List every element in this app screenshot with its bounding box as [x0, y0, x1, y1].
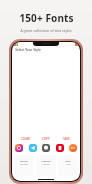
- button[interactable]: CLEAR: [15, 135, 35, 142]
- staticText: Preview: [20, 163, 28, 166]
- staticText: COPY: [42, 137, 50, 141]
- button[interactable]: Share to WhatsApp: [42, 144, 50, 152]
- staticText: Select Your Style: [15, 48, 41, 52]
- button[interactable]: Share to Pinterest: [56, 144, 64, 152]
- staticText: A great collection of text styles: [20, 28, 72, 33]
- button[interactable]: More options: [69, 144, 77, 152]
- button[interactable]: COPY: [35, 135, 56, 142]
- button[interactable]: sᴄʀɪᴘᴛᴇᴅ: [36, 155, 56, 176]
- staticText: Sample: [42, 163, 50, 166]
- button[interactable]: SAVE: [56, 135, 77, 142]
- staticText: CLEAR: [21, 137, 30, 141]
- staticText: ʙᴏʟᴅ: [65, 159, 71, 162]
- staticText: SAVE: [63, 137, 70, 141]
- staticText: ᴅᴏᴛᴛᴇᴅ: [20, 159, 28, 162]
- button[interactable]: Share to Telegram: [29, 144, 37, 152]
- button[interactable]: Share to Instagram: [15, 144, 23, 152]
- staticText: 150+ Fonts: [19, 11, 74, 25]
- staticText: sᴄʀɪᴘᴛᴇᴅ: [41, 159, 51, 162]
- staticText: Text: [66, 163, 71, 166]
- button[interactable]: ʙᴏʟᴅ: [58, 155, 78, 176]
- button[interactable]: ᴅᴏᴛᴛᴇᴅ: [14, 155, 34, 176]
